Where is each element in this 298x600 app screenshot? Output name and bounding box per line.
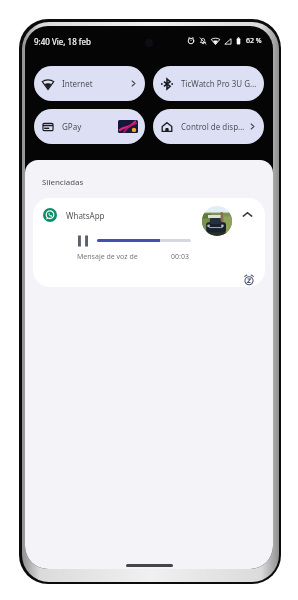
staticText: Control de disp… <box>181 121 248 132</box>
staticText: 62 % <box>246 36 262 46</box>
button[interactable]: Snooze <box>243 274 255 286</box>
button[interactable]: Collapse <box>241 208 254 221</box>
staticText: 9:40 Vie, 18 feb <box>34 36 91 47</box>
staticText: Mensaje de voz de <box>77 252 138 262</box>
button[interactable]: Pause <box>78 235 88 247</box>
button[interactable]: WhatsApp <box>33 198 265 287</box>
staticText: Silenciadas <box>42 177 84 188</box>
staticText: 00:03 <box>171 252 189 262</box>
staticText: TicWatch Pro 3U G… <box>181 78 257 89</box>
staticText: Internet <box>62 78 129 89</box>
staticText: GPay <box>62 121 118 132</box>
button[interactable]: TicWatch Pro 3U G… <box>153 66 264 101</box>
button[interactable]: Control de disp… <box>153 109 264 144</box>
staticText: WhatsApp <box>66 210 105 221</box>
button[interactable]: Internet <box>34 66 145 101</box>
button[interactable]: GPay <box>34 109 145 144</box>
